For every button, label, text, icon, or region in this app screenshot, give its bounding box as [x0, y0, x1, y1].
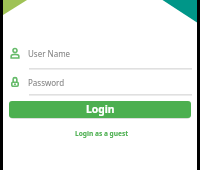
staticText: User Name — [28, 48, 71, 59]
button[interactable]: Password — [3, 73, 197, 91]
staticText: Password — [28, 77, 65, 88]
other: User name — [11, 48, 19, 58]
button[interactable]: Login — [9, 101, 191, 118]
button[interactable]: Login as a guest — [69, 126, 135, 141]
other: Password — [11, 77, 19, 87]
button[interactable]: User name — [3, 44, 197, 62]
staticText: Login — [86, 102, 115, 116]
